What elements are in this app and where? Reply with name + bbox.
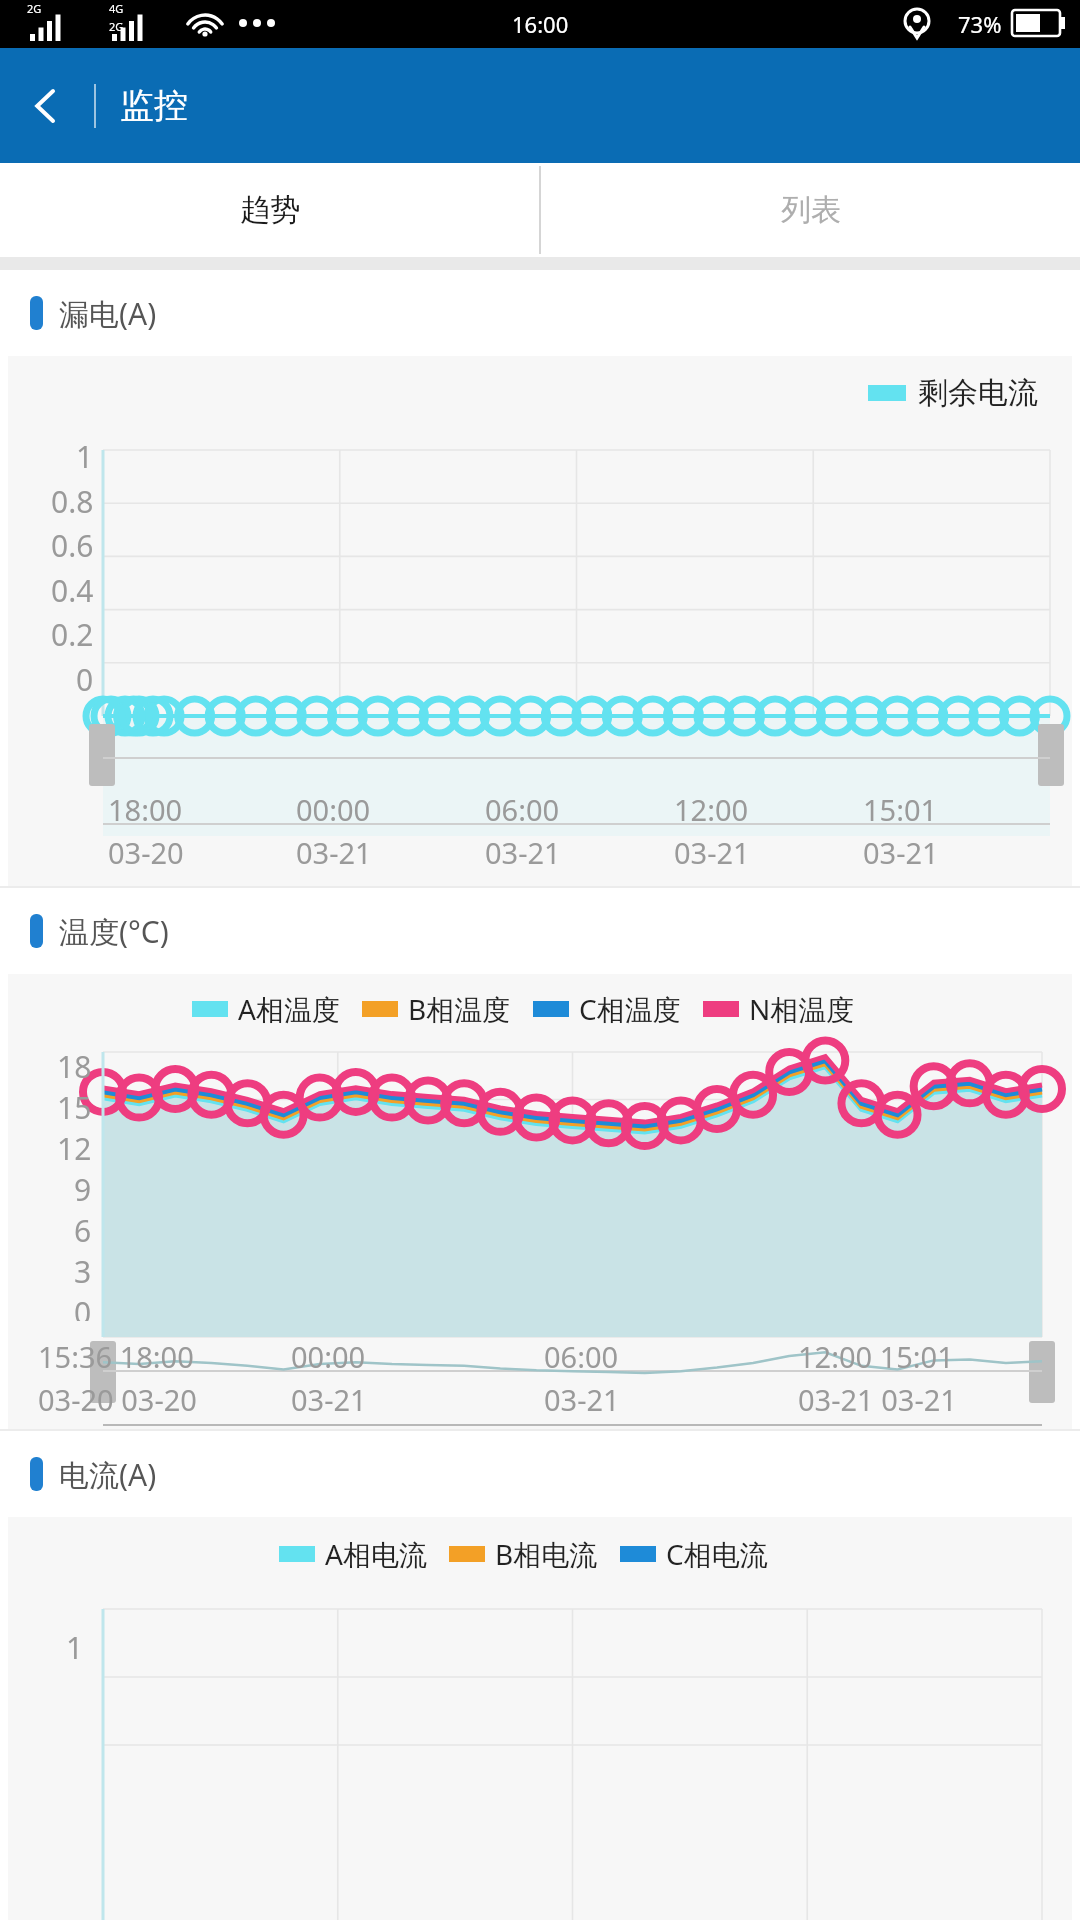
button[interactable]: Back bbox=[0, 48, 92, 163]
staticText: 00:00 bbox=[291, 1337, 366, 1376]
staticText: 06:00 bbox=[544, 1337, 619, 1376]
staticText: 03-21 03-21 bbox=[798, 1380, 957, 1419]
staticText: 00:00 bbox=[296, 790, 371, 829]
staticText: 0.2 bbox=[51, 614, 94, 655]
staticText: 监控 bbox=[120, 84, 188, 127]
staticText: A相温度 bbox=[238, 990, 340, 1028]
staticText: 03-21 bbox=[296, 833, 372, 872]
staticText: 2G bbox=[109, 19, 124, 34]
staticText: B相电流 bbox=[495, 1535, 598, 1573]
staticText: 15 bbox=[57, 1087, 92, 1128]
staticText: 温度(°C) bbox=[59, 911, 169, 952]
staticText: 列表 bbox=[781, 191, 841, 229]
staticText: 4G bbox=[109, 1, 124, 16]
staticText: 03-21 bbox=[674, 833, 750, 872]
staticText: 12:00 bbox=[674, 790, 749, 829]
staticText: 16:00 bbox=[512, 9, 569, 39]
staticText: 0 bbox=[76, 659, 94, 700]
staticText: B相温度 bbox=[408, 990, 511, 1028]
staticText: 03-21 bbox=[863, 833, 939, 872]
staticText: 06:00 bbox=[485, 790, 560, 829]
staticText: C相电流 bbox=[666, 1535, 768, 1573]
staticText: 电流(A) bbox=[59, 1454, 157, 1495]
staticText: 03-20 bbox=[108, 833, 184, 872]
staticText: 12 bbox=[57, 1128, 92, 1169]
staticText: 03-21 bbox=[544, 1380, 620, 1419]
staticText: 15:36 18:00 bbox=[38, 1337, 194, 1376]
staticText: 1 bbox=[66, 1627, 84, 1668]
staticText: 73% bbox=[958, 9, 1002, 39]
button[interactable]: 趋势 bbox=[0, 163, 539, 257]
staticText: 0.6 bbox=[51, 525, 94, 566]
staticText: 漏电(A) bbox=[59, 293, 157, 334]
staticText: 18:00 bbox=[108, 790, 183, 829]
staticText: 1 bbox=[76, 436, 94, 477]
staticText: 0 bbox=[74, 1292, 92, 1321]
staticText: 18 bbox=[57, 1046, 92, 1087]
staticText: 03-21 bbox=[485, 833, 561, 872]
button[interactable]: 列表 bbox=[541, 163, 1080, 257]
staticText: 9 bbox=[74, 1169, 92, 1210]
staticText: 3 bbox=[74, 1251, 92, 1292]
staticText: 剩余电流 bbox=[918, 374, 1038, 412]
staticText: 2G bbox=[27, 1, 42, 16]
staticText: 6 bbox=[74, 1210, 92, 1251]
staticText: 趋势 bbox=[240, 191, 300, 229]
staticText: N相温度 bbox=[749, 990, 855, 1028]
staticText: C相温度 bbox=[579, 990, 681, 1028]
staticText: 15:01 bbox=[863, 790, 938, 829]
staticText: 03-20 03-20 bbox=[38, 1380, 197, 1419]
staticText: 12:00 15:01 bbox=[798, 1337, 954, 1376]
staticText: 0.8 bbox=[51, 481, 94, 522]
staticText: A相电流 bbox=[325, 1535, 427, 1573]
staticText: 0.4 bbox=[51, 570, 94, 611]
staticText: 03-21 bbox=[291, 1380, 367, 1419]
